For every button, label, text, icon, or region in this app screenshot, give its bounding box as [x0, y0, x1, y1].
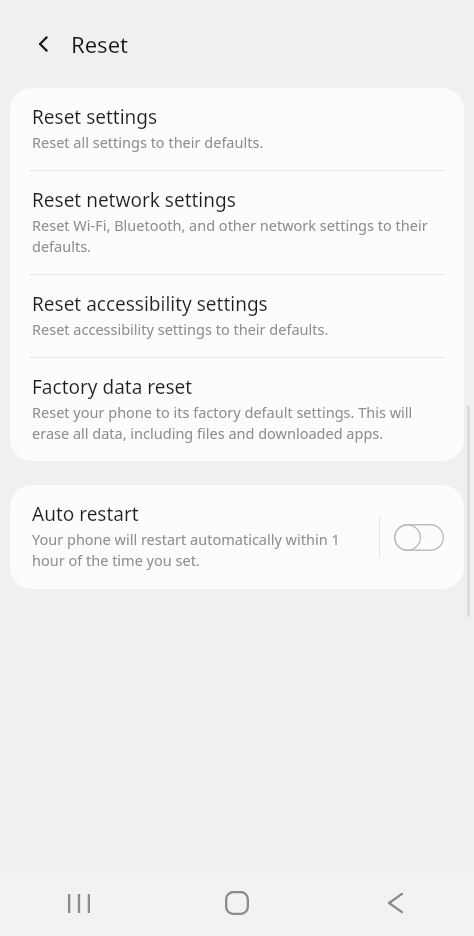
button[interactable]: Auto restart toggle [392, 517, 446, 557]
staticText: Auto restart [32, 501, 139, 526]
staticText: Reset accessibility settings to their de… [32, 319, 329, 340]
staticText: Reset accessibility settings [32, 291, 268, 316]
button[interactable]: Home [158, 870, 316, 936]
button[interactable]: Reset settings [10, 88, 464, 170]
staticText: Reset [71, 29, 128, 59]
button[interactable]: Reset network settings [10, 171, 464, 274]
button[interactable]: Auto restart [10, 485, 464, 589]
staticText: Your phone will restart automatically wi… [32, 529, 371, 571]
button[interactable]: Reset accessibility settings [10, 275, 464, 357]
button[interactable]: Factory data reset [10, 358, 464, 461]
staticText: Reset your phone to its factory default … [32, 402, 440, 444]
staticText: Reset Wi-Fi, Bluetooth, and other networ… [32, 215, 440, 257]
staticText: Reset all settings to their defaults. [32, 132, 264, 153]
button[interactable]: Recent apps [0, 870, 158, 936]
button[interactable]: Back [22, 22, 66, 66]
staticText: Factory data reset [32, 374, 193, 399]
button[interactable]: Back [316, 870, 474, 936]
staticText: Reset network settings [32, 187, 236, 212]
staticText: Reset settings [32, 104, 158, 129]
